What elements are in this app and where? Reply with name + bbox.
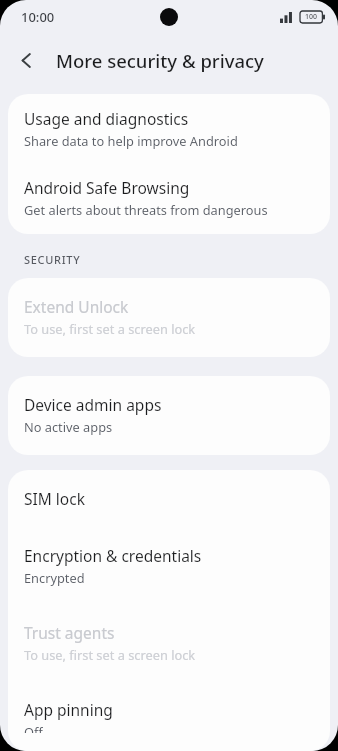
- staticText: Encryption & credentials: [24, 545, 202, 566]
- staticText: 10:00: [21, 8, 55, 26]
- staticText: Get alerts about threats from dangerous …: [24, 201, 316, 218]
- button[interactable]: Usage and diagnostics: [8, 94, 330, 163]
- staticText: Off: [24, 723, 43, 733]
- staticText: No active apps: [24, 418, 113, 435]
- staticText: To use, first set a screen lock: [24, 646, 196, 663]
- button[interactable]: Back: [8, 42, 44, 78]
- button[interactable]: Android Safe Browsing: [8, 163, 330, 234]
- staticText: App pinning: [24, 699, 113, 720]
- staticText: More security & privacy: [56, 48, 264, 73]
- staticText: Extend Unlock: [24, 296, 129, 317]
- staticText: Encrypted: [24, 569, 85, 586]
- staticText: Trust agents: [24, 622, 115, 643]
- staticText: To use, first set a screen lock: [24, 320, 196, 337]
- staticText: 100: [305, 12, 318, 22]
- button[interactable]: SIM lock: [8, 470, 330, 531]
- button: Extend Unlock: [8, 278, 330, 357]
- staticText: Usage and diagnostics: [24, 108, 189, 129]
- button: Trust agents: [8, 608, 330, 685]
- button[interactable]: App pinning: [8, 685, 330, 751]
- staticText: SIM lock: [24, 488, 85, 509]
- staticText: Device admin apps: [24, 394, 162, 415]
- staticText: Android Safe Browsing: [24, 177, 190, 198]
- button[interactable]: Encryption & credentials: [8, 531, 330, 608]
- staticText: SECURITY: [24, 252, 81, 267]
- button[interactable]: Device admin apps: [8, 376, 330, 455]
- staticText: Share data to help improve Android: [24, 132, 238, 149]
